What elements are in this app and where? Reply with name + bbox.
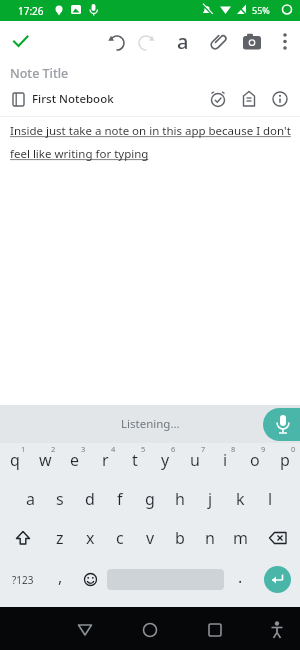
button[interactable] <box>69 613 101 645</box>
button[interactable] <box>261 613 293 645</box>
button[interactable]: r <box>90 443 120 482</box>
staticText: f <box>117 488 123 510</box>
button[interactable]: a <box>170 25 196 57</box>
staticText: p <box>280 449 290 471</box>
button[interactable]: ?123 <box>0 560 45 599</box>
staticText: c <box>116 527 124 549</box>
staticText: d <box>85 488 95 510</box>
button[interactable]: h <box>165 482 195 521</box>
button[interactable]: . <box>225 560 255 599</box>
staticText: o <box>250 449 260 471</box>
staticText: m <box>233 527 248 549</box>
staticText: feel like writing for typing <box>10 146 149 162</box>
staticText: 4 <box>111 444 116 454</box>
button[interactable]: t <box>120 443 150 482</box>
staticText: r <box>102 449 109 471</box>
staticText: u <box>190 449 200 471</box>
button[interactable]: w <box>30 443 60 482</box>
staticText: g <box>145 488 155 510</box>
button[interactable] <box>255 521 300 560</box>
staticText: t <box>132 449 138 471</box>
staticText: i <box>223 449 228 471</box>
staticText: k <box>236 488 245 510</box>
staticText: w <box>39 449 52 471</box>
button[interactable]: g <box>135 482 165 521</box>
staticText: s <box>56 488 64 510</box>
button[interactable] <box>199 613 231 645</box>
staticText: 17:26 <box>18 4 44 18</box>
button[interactable] <box>239 29 265 55</box>
button[interactable]: , <box>45 560 75 599</box>
button[interactable]: First Notebook <box>32 91 114 107</box>
button[interactable]: a <box>15 482 45 521</box>
button[interactable]: i <box>210 443 240 482</box>
staticText: q <box>10 449 20 471</box>
staticText: 1 <box>21 444 26 454</box>
button[interactable] <box>6 28 34 56</box>
button[interactable]: v <box>135 521 165 560</box>
staticText: Inside just take a note on in this app b… <box>10 123 291 139</box>
staticText: a <box>177 28 189 55</box>
staticText: 2 <box>51 444 56 454</box>
button[interactable] <box>133 29 159 55</box>
button[interactable]: n <box>195 521 225 560</box>
staticText: y <box>161 449 170 471</box>
button[interactable] <box>237 87 261 111</box>
button[interactable] <box>206 87 230 111</box>
staticText: l <box>268 488 273 510</box>
button[interactable]: l <box>255 482 285 521</box>
staticText: ?123 <box>12 573 34 587</box>
staticText: Note Title <box>10 65 69 82</box>
button[interactable]: q <box>0 443 30 482</box>
button[interactable]: d <box>75 482 105 521</box>
staticText: 9 <box>261 444 266 454</box>
staticText: z <box>56 527 64 549</box>
button[interactable]: p <box>270 443 300 482</box>
button[interactable]: m <box>225 521 255 560</box>
button[interactable] <box>104 29 130 55</box>
button[interactable]: b <box>165 521 195 560</box>
button[interactable]: x <box>75 521 105 560</box>
button[interactable] <box>75 560 105 599</box>
staticText: 8 <box>231 444 236 454</box>
staticText: 55% <box>252 4 270 16</box>
staticText: e <box>70 449 80 471</box>
staticText: 6 <box>171 444 176 454</box>
button[interactable]: c <box>105 521 135 560</box>
button[interactable]: z <box>45 521 75 560</box>
staticText: 5 <box>141 444 146 454</box>
button[interactable] <box>255 560 300 599</box>
staticText: n <box>205 527 215 549</box>
staticText: b <box>175 527 185 549</box>
button[interactable]: k <box>225 482 255 521</box>
button[interactable] <box>0 521 45 560</box>
staticText: h <box>175 488 185 510</box>
button[interactable] <box>263 408 300 441</box>
staticText: 3 <box>81 444 86 454</box>
staticText: Listening... <box>121 416 180 432</box>
button[interactable] <box>268 87 292 111</box>
button[interactable] <box>273 29 297 53</box>
button[interactable]: s <box>45 482 75 521</box>
button[interactable] <box>205 29 231 55</box>
button[interactable]: u <box>180 443 210 482</box>
staticText: . <box>238 566 243 588</box>
button[interactable]: o <box>240 443 270 482</box>
staticText: 7 <box>201 444 206 454</box>
staticText: x <box>86 527 95 549</box>
button[interactable] <box>105 560 225 599</box>
button[interactable]: f <box>105 482 135 521</box>
staticText: j <box>208 488 213 510</box>
button[interactable]: j <box>195 482 225 521</box>
staticText: a <box>26 488 35 510</box>
staticText: 0 <box>291 444 296 454</box>
staticText: , <box>58 566 63 588</box>
staticText: v <box>146 527 155 549</box>
button[interactable]: e <box>60 443 90 482</box>
button[interactable]: y <box>150 443 180 482</box>
button[interactable] <box>134 613 166 645</box>
